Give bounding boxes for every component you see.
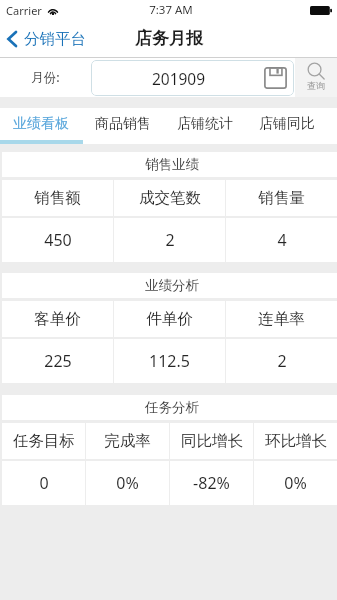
staticText: 连单率 (258, 309, 305, 329)
staticText: 月份: (0, 69, 91, 86)
staticText: Carrier (6, 3, 42, 18)
staticText: 112.5 (149, 350, 190, 372)
staticText: 0 (39, 472, 49, 494)
staticText: 4 (277, 229, 287, 251)
staticText: 销售业绩 (145, 156, 199, 173)
staticText: 450 (44, 229, 72, 251)
staticText: 0% (284, 472, 307, 494)
staticText: 店铺同比 (259, 115, 315, 133)
staticText: 成交笔数 (139, 188, 201, 208)
button[interactable]: 业绩看板 (0, 108, 82, 140)
staticText: 店铺统计 (177, 115, 233, 133)
staticText: 查询 (307, 80, 325, 91)
staticText: 业绩看板 (13, 115, 69, 133)
staticText: 分销平台 (24, 29, 86, 49)
staticText: 201909 (93, 68, 264, 89)
staticText: 完成率 (104, 431, 151, 451)
staticText: -82% (193, 472, 230, 494)
button[interactable]: 店铺同比 (246, 108, 328, 140)
staticText: 任务目标 (13, 431, 75, 451)
other: Save (264, 67, 287, 89)
button[interactable]: 分销平台 (0, 20, 94, 57)
staticText: 环比增长 (265, 431, 327, 451)
staticText: 商品销售 (95, 115, 151, 133)
staticText: 同比增长 (181, 431, 243, 451)
button[interactable]: 查询 (295, 58, 337, 97)
staticText: 任务分析 (145, 399, 199, 416)
staticText: 销售额 (34, 188, 81, 208)
staticText: 业绩分析 (145, 277, 199, 294)
staticText: 2 (277, 350, 287, 372)
staticText: 客单价 (34, 309, 81, 329)
staticText: 件单价 (146, 309, 193, 329)
staticText: 7:37 AM (149, 2, 193, 18)
staticText: 0% (116, 472, 139, 494)
staticText: 2 (165, 229, 175, 251)
staticText: 225 (44, 350, 72, 372)
button[interactable]: 店铺统计 (164, 108, 246, 140)
staticText: 销售量 (258, 188, 305, 208)
button[interactable]: 商品销售 (82, 108, 164, 140)
button[interactable]: 201909 (91, 60, 294, 96)
staticText: 店务月报 (135, 28, 203, 49)
